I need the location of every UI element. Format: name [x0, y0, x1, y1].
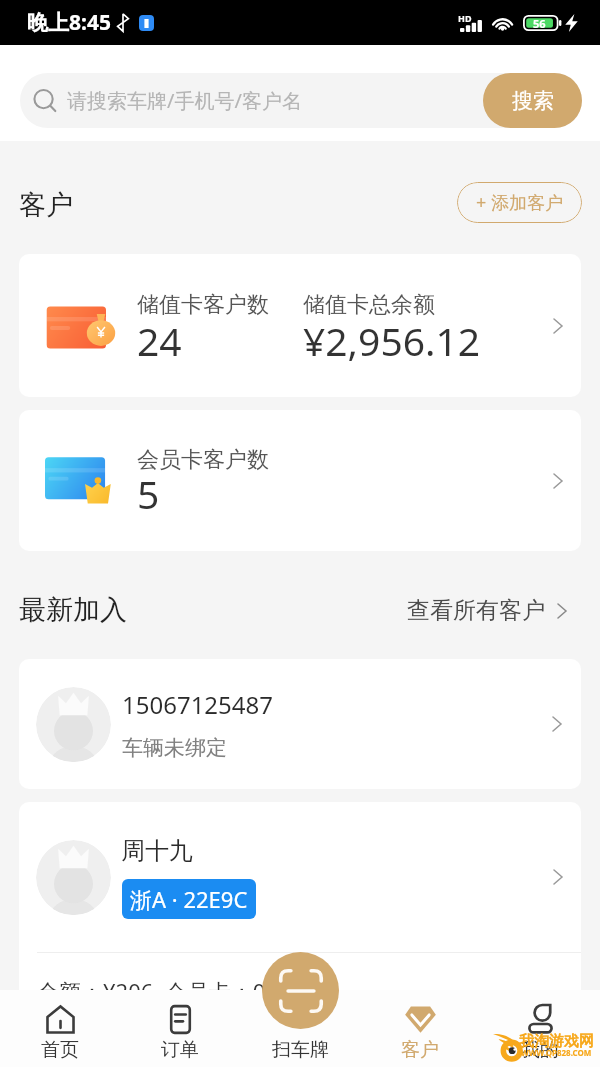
staticText: ¥2,956.12	[303, 314, 481, 367]
staticText: 余额：¥206 会员卡：0	[37, 976, 266, 1006]
button[interactable]: 扫车牌	[262, 952, 339, 1029]
staticText: 储值卡客户数	[137, 291, 269, 319]
staticText: 会员卡客户数	[137, 446, 269, 474]
staticText: 56	[533, 16, 546, 31]
staticText: 客户	[19, 188, 73, 222]
staticText: WWW.QP828.COM	[521, 1047, 592, 1058]
button[interactable]: 储值卡客户数	[19, 254, 581, 397]
button[interactable]: 15067125487	[19, 659, 581, 789]
button[interactable]: 订单	[120, 990, 240, 1067]
button[interactable]: 扫车牌	[240, 990, 360, 1067]
staticText: 订单	[161, 1038, 199, 1062]
button[interactable]: 查看所有客户	[407, 590, 567, 631]
button[interactable]: 我的	[480, 990, 600, 1067]
button[interactable]: 首页	[0, 990, 120, 1067]
staticText: 首页	[41, 1038, 79, 1062]
staticText: 15067125487	[122, 688, 274, 721]
staticText: 扫车牌	[272, 1038, 329, 1062]
staticText: 车辆未绑定	[122, 735, 227, 761]
staticText: 5	[137, 467, 160, 520]
staticText: 请搜索车牌/手机号/客户名	[67, 87, 302, 114]
button[interactable]: + 添加客户	[457, 182, 582, 223]
staticText: 我淘游戏网	[519, 1032, 594, 1051]
button[interactable]: 客户	[360, 990, 480, 1067]
staticText: 查看所有客户	[407, 596, 545, 625]
button[interactable]: 请搜索车牌/手机号/客户名	[20, 73, 582, 128]
staticText: + 添加客户	[476, 190, 563, 215]
button[interactable]: 周十九	[19, 802, 581, 1013]
staticText: 周十九	[121, 836, 193, 866]
staticText: 储值卡总余额	[303, 291, 435, 319]
button[interactable]: 会员卡客户数	[19, 410, 581, 551]
staticText: 最新加入	[19, 593, 127, 627]
staticText: 客户	[401, 1038, 439, 1062]
staticText: 浙A · 22E9C	[130, 884, 248, 914]
button[interactable]: 搜索	[483, 73, 582, 128]
staticText: 晚上8:45	[27, 8, 111, 37]
staticText: 24	[137, 314, 182, 367]
staticText: HD	[458, 12, 472, 24]
staticText: 我的	[521, 1038, 559, 1062]
staticText: 搜索	[512, 88, 554, 114]
